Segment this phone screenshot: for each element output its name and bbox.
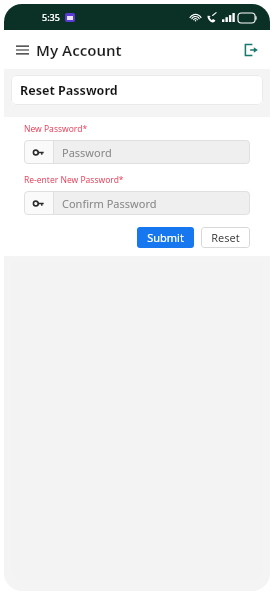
staticText: Password bbox=[62, 145, 112, 160]
button[interactable]: Logout bbox=[238, 37, 264, 63]
button[interactable]: Submit bbox=[137, 227, 194, 248]
button[interactable]: Reset bbox=[201, 227, 250, 248]
staticText: Re-enter New Password* bbox=[24, 174, 124, 186]
staticText: Reset bbox=[211, 230, 240, 245]
staticText: Submit bbox=[147, 230, 184, 245]
button[interactable]: Password bbox=[24, 140, 250, 164]
staticText: Confirm Password bbox=[62, 196, 157, 211]
button[interactable]: Menu bbox=[9, 37, 35, 63]
staticText: 5:35 bbox=[42, 11, 60, 23]
staticText: Reset Password bbox=[20, 82, 118, 99]
button[interactable]: Reset Password bbox=[11, 75, 263, 105]
staticText: New Password* bbox=[24, 123, 88, 135]
staticText: My Account bbox=[36, 40, 122, 60]
button[interactable]: Confirm Password bbox=[24, 191, 250, 215]
